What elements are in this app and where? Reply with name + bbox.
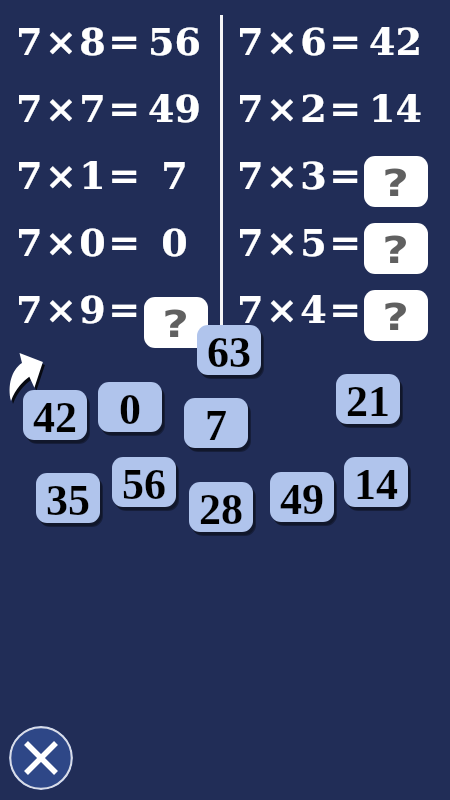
staticText: 7×3= bbox=[237, 153, 364, 198]
staticText: 7×9= bbox=[16, 287, 143, 332]
staticText: 21 bbox=[346, 377, 390, 424]
staticText: 28 bbox=[199, 485, 243, 532]
staticText: 7×4= bbox=[237, 287, 364, 332]
staticText: 56 bbox=[148, 19, 201, 64]
staticText: 49 bbox=[280, 475, 324, 522]
button[interactable]: 49 bbox=[270, 472, 334, 522]
button[interactable]: Answer slot bbox=[144, 297, 208, 348]
button[interactable]: 56 bbox=[112, 457, 176, 507]
staticText: 7 bbox=[205, 401, 227, 448]
button[interactable]: 0 bbox=[98, 382, 162, 432]
staticText: 7×6= bbox=[237, 19, 364, 64]
staticText: ? bbox=[382, 161, 410, 206]
staticText: 42 bbox=[369, 19, 422, 64]
button[interactable]: 21 bbox=[336, 374, 400, 424]
staticText: 7×2= bbox=[237, 86, 364, 131]
button[interactable]: Answer slot bbox=[364, 290, 428, 341]
button[interactable]: 42 bbox=[23, 390, 87, 440]
button[interactable]: 14 bbox=[344, 457, 408, 507]
staticText: 0 bbox=[161, 220, 188, 265]
staticText: 14 bbox=[354, 460, 398, 507]
staticText: 7×8= bbox=[16, 19, 143, 64]
button[interactable]: Answer slot bbox=[364, 156, 428, 207]
button[interactable]: Answer slot bbox=[364, 223, 428, 274]
staticText: 56 bbox=[122, 460, 166, 507]
staticText: ? bbox=[162, 302, 190, 347]
staticText: 0 bbox=[119, 385, 141, 432]
staticText: 14 bbox=[369, 86, 422, 131]
staticText: ? bbox=[382, 228, 410, 273]
staticText: 7×1= bbox=[16, 153, 143, 198]
staticText: 42 bbox=[33, 393, 77, 440]
button[interactable]: 35 bbox=[36, 473, 100, 523]
staticText: 49 bbox=[148, 86, 201, 131]
button[interactable]: 28 bbox=[189, 482, 253, 532]
button[interactable]: 63 bbox=[197, 325, 261, 375]
staticText: 7 bbox=[161, 153, 188, 198]
staticText: 35 bbox=[46, 476, 90, 523]
staticText: 7×5= bbox=[237, 220, 364, 265]
button[interactable]: 7 bbox=[184, 398, 248, 448]
staticText: ? bbox=[382, 295, 410, 340]
staticText: 7×0= bbox=[16, 220, 143, 265]
button[interactable]: Close bbox=[9, 726, 73, 790]
staticText: 7×7= bbox=[16, 86, 143, 131]
staticText: 63 bbox=[207, 328, 251, 375]
